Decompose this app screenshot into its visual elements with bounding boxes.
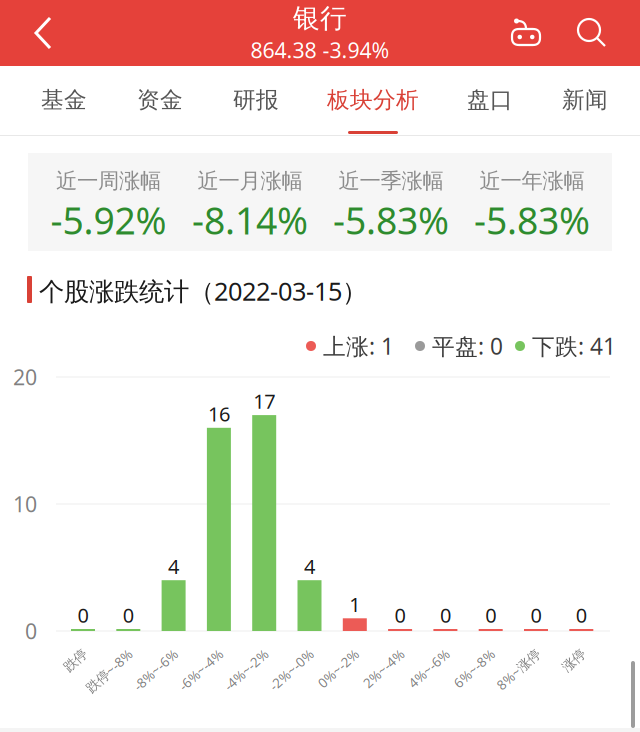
staticText: 6%~-8% [437,645,487,663]
staticText: 盘口 [467,86,513,114]
button[interactable]: Assistant [498,0,554,66]
staticText: 4 [168,553,179,579]
button[interactable]: 板块分析 [313,66,433,136]
staticText: 银行 [293,2,347,35]
staticText: 1 [349,591,360,618]
button[interactable]: 资金 [100,66,220,136]
staticText: 研报 [233,86,279,114]
button[interactable]: 新闻 [525,66,640,136]
staticText: 0 [485,602,496,628]
staticText: 0%~-2% [301,645,351,663]
staticText: 10 [13,490,37,518]
staticText: 4%~-6% [391,645,441,663]
staticText: 0 [576,602,587,628]
staticText: 近一季涨幅 [338,168,443,194]
staticText: 个股涨跌统计（2022-03-15） [39,274,367,308]
staticText: 17 [253,388,275,414]
staticText: -6%~-4% [161,645,215,663]
staticText: 下跌: 41 [532,331,616,361]
staticText: -8%~-6% [116,645,170,663]
staticText: 近一年涨幅 [479,168,584,194]
staticText: 0 [77,602,88,628]
staticText: 跌停 [53,646,79,662]
staticText: 0 [395,602,406,628]
staticText: -8.14% [192,195,308,245]
button[interactable]: 研报 [196,66,316,136]
staticText: -5.83% [474,195,590,245]
staticText: 跌停~-8% [67,645,124,663]
staticText: 16 [208,400,230,427]
staticText: 近一周涨幅 [56,168,161,194]
staticText: 近一月涨幅 [197,168,302,194]
staticText: -4%~-2% [206,645,260,663]
staticText: 板块分析 [327,86,419,114]
staticText: 0 [123,602,134,628]
staticText: 864.38 -3.94% [250,36,389,64]
staticText: 资金 [137,86,183,114]
button[interactable]: Search [562,0,622,66]
staticText: 4 [304,553,315,579]
staticText: 20 [13,363,37,391]
staticText: 基金 [41,86,87,114]
button[interactable]: Back [13,0,73,66]
staticText: 0 [440,602,451,628]
staticText: -5.83% [333,195,449,245]
button[interactable]: 基金 [4,66,124,136]
staticText: -2%~-0% [251,645,305,663]
button[interactable]: 盘口 [430,66,550,136]
staticText: 新闻 [562,86,608,114]
staticText: 涨停 [551,646,577,662]
staticText: 2%~-4% [346,645,396,663]
staticText: 8%~涨停 [479,645,532,663]
staticText: 0 [530,602,541,628]
staticText: -5.92% [50,195,166,245]
staticText: 平盘: 0 [432,331,503,361]
staticText: 上涨: 1 [323,331,394,361]
staticText: 0 [25,617,37,645]
